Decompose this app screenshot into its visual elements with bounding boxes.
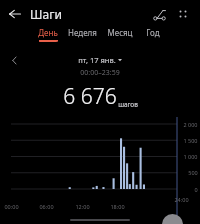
button[interactable]: Previous day bbox=[7, 54, 21, 66]
staticText: День bbox=[38, 27, 58, 38]
staticText: 0 bbox=[194, 186, 198, 193]
button[interactable]: Scroll control bbox=[162, 214, 183, 224]
staticText: 00:00–23:59 bbox=[80, 68, 120, 78]
staticText: 6 676 bbox=[63, 82, 117, 111]
button[interactable]: Activity type bbox=[147, 2, 171, 26]
staticText: 06:00 bbox=[39, 203, 54, 210]
staticText: пт, 17 янв. bbox=[78, 55, 116, 65]
staticText: 12:00 bbox=[75, 203, 90, 210]
staticText: 18:00 bbox=[110, 203, 125, 210]
button[interactable]: пт, 17 янв. bbox=[75, 54, 125, 66]
staticText: 24:00 bbox=[174, 196, 189, 203]
staticText: шагов bbox=[118, 100, 138, 109]
staticText: 1 500 bbox=[183, 137, 198, 144]
button[interactable]: День bbox=[37, 27, 59, 42]
staticText: 2 000 bbox=[183, 121, 198, 128]
button[interactable]: Back bbox=[4, 3, 26, 25]
button[interactable]: Год bbox=[142, 27, 163, 42]
staticText: Неделя bbox=[68, 27, 97, 38]
staticText: Месяц bbox=[107, 27, 133, 38]
button[interactable]: More options bbox=[171, 2, 195, 26]
staticText: Шаги bbox=[30, 6, 62, 22]
staticText: 500 bbox=[188, 169, 198, 176]
button[interactable]: Неделя bbox=[67, 27, 98, 42]
staticText: Год bbox=[146, 27, 160, 38]
staticText: 00:00 bbox=[4, 203, 19, 210]
button[interactable]: Месяц bbox=[106, 27, 134, 42]
staticText: 1 000 bbox=[183, 153, 198, 160]
